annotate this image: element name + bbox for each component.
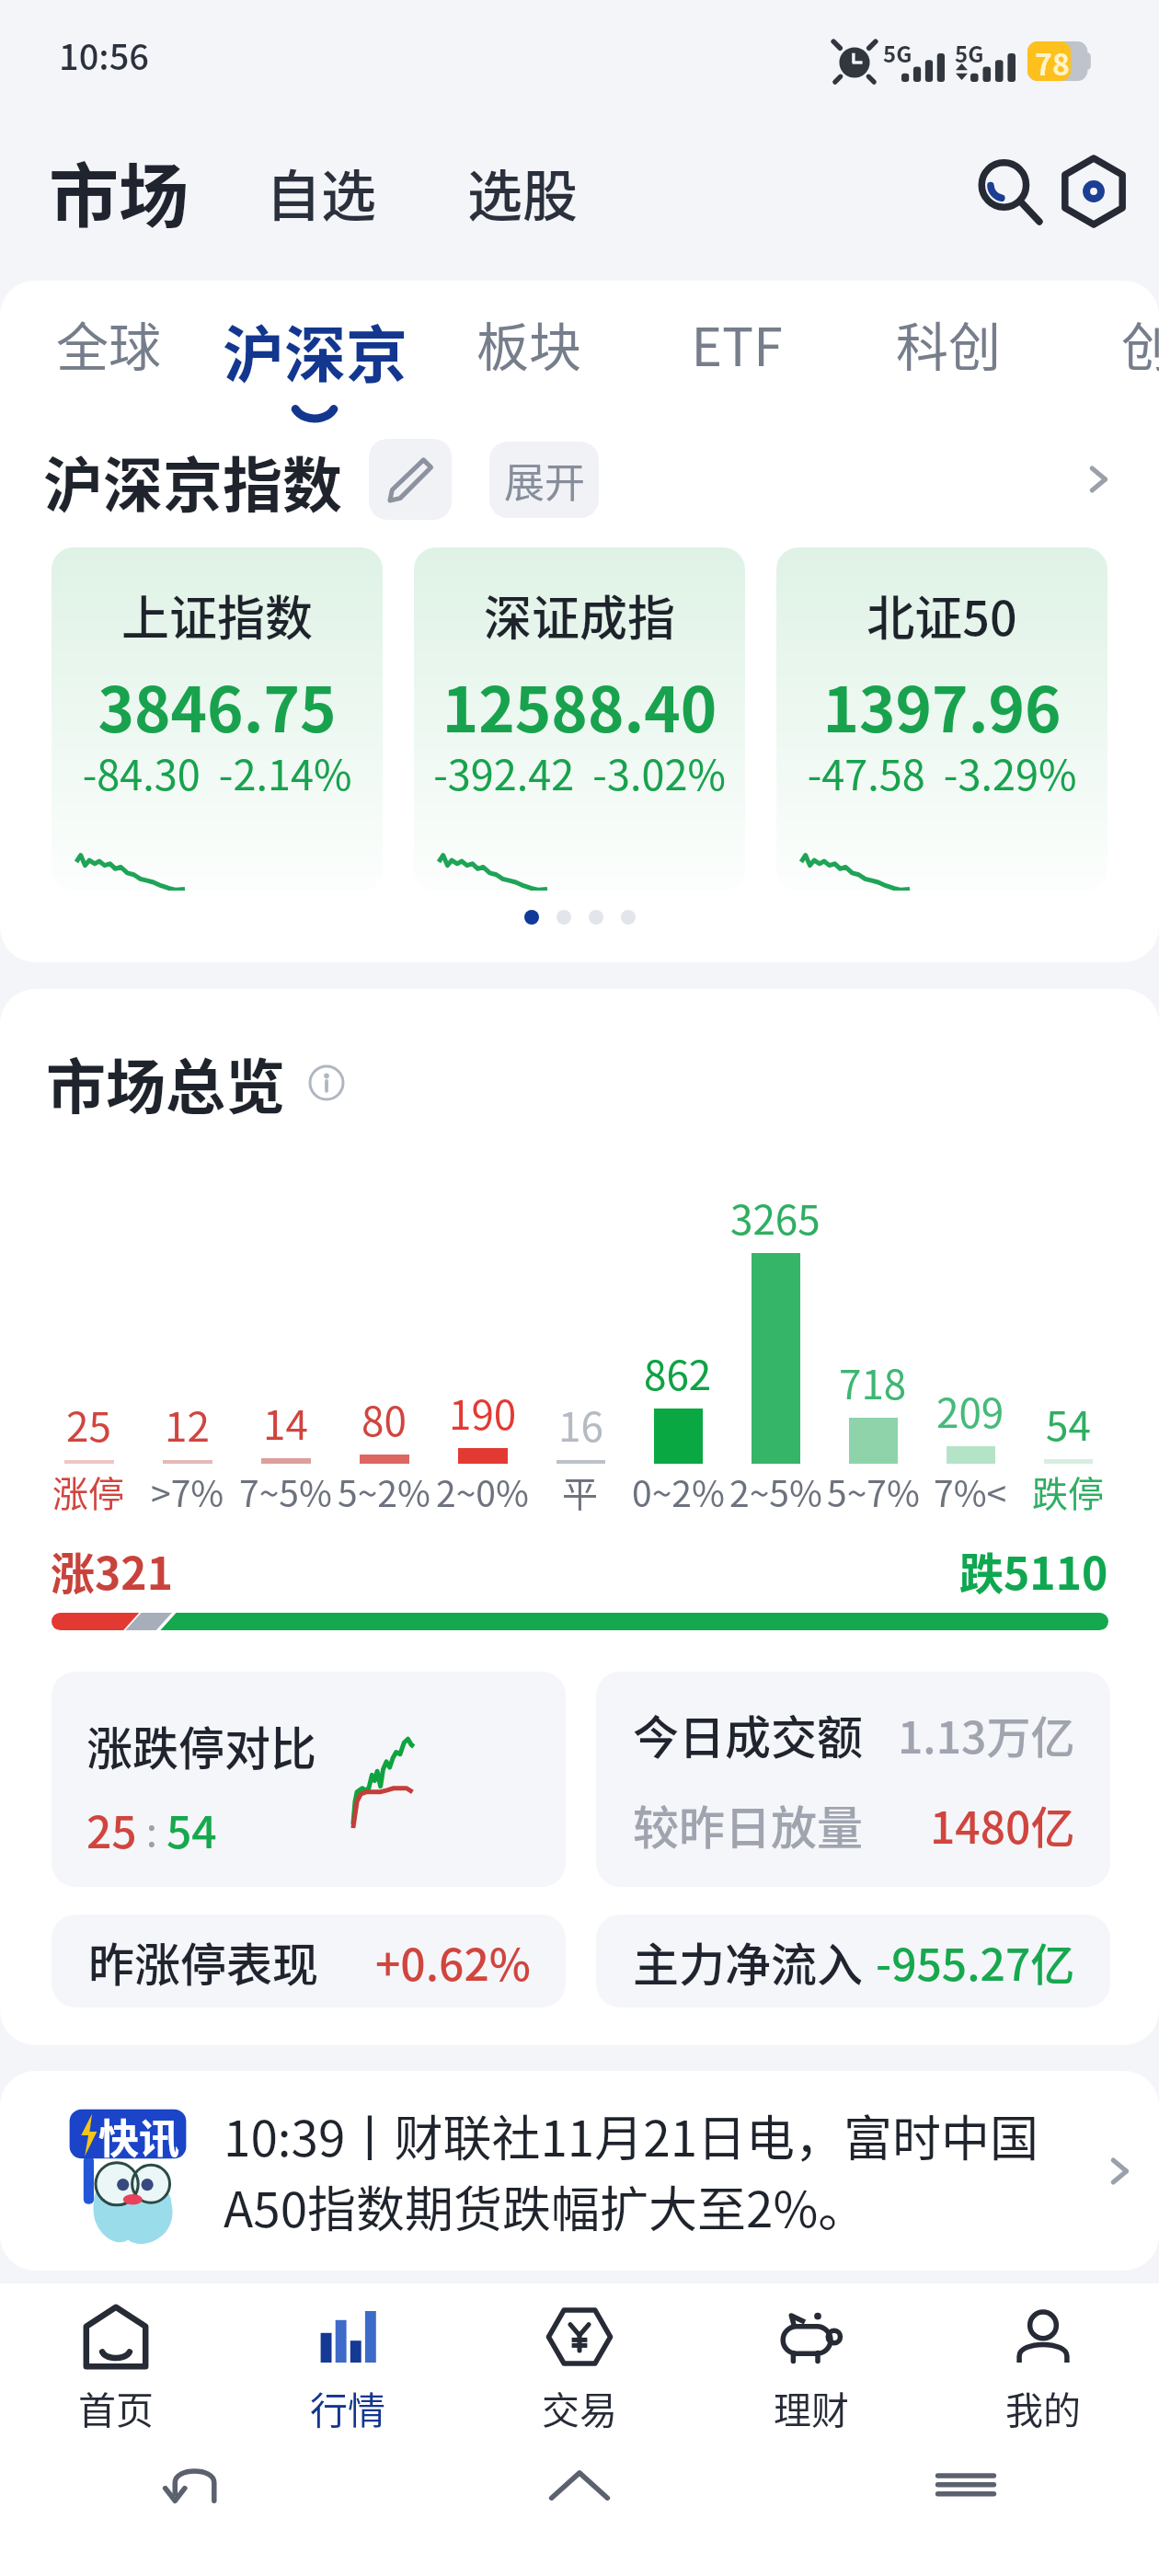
button[interactable]: 上证指数 — [52, 547, 383, 891]
button[interactable]: Recents — [931, 2449, 1001, 2519]
staticText: 板块 — [476, 305, 581, 382]
button[interactable]: 自选 — [266, 152, 376, 232]
staticText: 5~2% — [338, 1466, 430, 1517]
button[interactable]: 我的 — [927, 2305, 1159, 2434]
button[interactable]: 板块 — [419, 305, 639, 382]
staticText: 我的 — [1005, 2380, 1081, 2434]
staticText: 209 — [936, 1381, 1004, 1440]
staticText: 2~0% — [436, 1466, 529, 1517]
staticText: 展开 — [504, 451, 585, 510]
staticText: 862 — [644, 1343, 712, 1402]
staticText: 理财 — [774, 2380, 849, 2434]
staticText: -84.30 -2.14% — [52, 742, 383, 802]
button[interactable]: 昨涨停表现 — [52, 1915, 566, 2007]
button[interactable]: 理财 — [695, 2305, 927, 2434]
button[interactable]: 创 — [1037, 305, 1159, 382]
staticText: A50指数期货跌幅扩大至2%。 — [224, 2171, 867, 2242]
staticText: 10:39丨财联社11月21日电，富时中国 — [224, 2100, 1039, 2171]
button[interactable]: 沪深京 — [204, 305, 425, 420]
staticText: 5G — [883, 37, 912, 69]
button[interactable]: ETF — [626, 305, 847, 382]
staticText: >7% — [151, 1466, 224, 1517]
button[interactable]: Info — [306, 1063, 347, 1103]
staticText: 北证50 — [776, 581, 1107, 650]
button[interactable]: Settings — [1052, 150, 1135, 233]
staticText: 10:56 — [59, 29, 149, 80]
staticText: 5~7% — [827, 1466, 920, 1517]
button[interactable]: 主力净流入 — [596, 1915, 1110, 2007]
staticText: 7~5% — [239, 1466, 332, 1517]
staticText: 首页 — [78, 2380, 154, 2434]
button[interactable]: 市场 — [49, 141, 189, 242]
staticText: 市场总览 — [46, 1040, 286, 1126]
staticText: 718 — [839, 1352, 907, 1411]
staticText: 25 — [86, 1797, 137, 1861]
button[interactable]: Home — [545, 2449, 614, 2519]
staticText: 1480亿 — [930, 1792, 1075, 1857]
staticText: 3846.75 — [52, 661, 383, 750]
staticText: 跌5110 — [959, 1538, 1108, 1603]
staticText: -955.27亿 — [876, 1929, 1075, 1994]
staticText: 平 — [562, 1466, 599, 1517]
button[interactable]: Search — [968, 150, 1050, 233]
staticText: 科创 — [896, 305, 1001, 382]
button[interactable]: 今日成交额 — [596, 1672, 1110, 1887]
staticText: 主力净流入 — [633, 1928, 863, 1995]
staticText: 跌停 — [1032, 1466, 1105, 1517]
staticText: 14 — [263, 1393, 308, 1452]
staticText: -47.58 -3.29% — [776, 742, 1107, 802]
staticText: 5G — [955, 37, 984, 69]
staticText: 沪深京 — [223, 305, 407, 395]
button[interactable]: 首页 — [0, 2305, 232, 2434]
staticText: 涨跌停对比 — [86, 1712, 316, 1778]
button[interactable]: 科创 — [838, 305, 1059, 382]
staticText: 选股 — [467, 152, 578, 232]
button[interactable]: 展开 — [489, 442, 599, 518]
staticText: 1397.96 — [776, 661, 1107, 750]
button[interactable]: 选股 — [467, 152, 578, 232]
button[interactable]: 快讯 — [0, 2071, 1159, 2271]
staticText: 涨321 — [51, 1538, 173, 1603]
staticText: 快讯 — [98, 2107, 179, 2166]
staticText: -392.42 -3.02% — [414, 742, 745, 802]
button[interactable]: 北证50 — [776, 547, 1107, 891]
staticText: 12588.40 — [414, 661, 745, 750]
staticText: 市场 — [49, 141, 189, 242]
staticText: 0~2% — [632, 1466, 725, 1517]
staticText: 3265 — [730, 1188, 820, 1247]
staticText: 1.13万亿 — [898, 1702, 1075, 1766]
staticText: 上证指数 — [52, 581, 383, 650]
staticText: 54 — [1046, 1394, 1091, 1453]
staticText: +0.62% — [375, 1929, 531, 1994]
staticText: 涨停 — [52, 1466, 125, 1517]
button[interactable]: 沪深京指数 — [43, 438, 1115, 521]
button[interactable]: 深证成指 — [414, 547, 745, 891]
staticText: 7%< — [934, 1466, 1007, 1517]
button[interactable]: 全球 — [0, 305, 219, 382]
staticText: 190 — [449, 1383, 517, 1442]
button[interactable]: 行情 — [232, 2305, 464, 2434]
button[interactable]: Back — [158, 2449, 228, 2519]
staticText: 沪深京指数 — [43, 438, 343, 521]
staticText: 12 — [165, 1395, 210, 1454]
staticText: 全球 — [56, 305, 161, 382]
staticText: 今日成交额 — [633, 1701, 863, 1767]
staticText: ETF — [691, 305, 783, 382]
staticText: 78 — [1035, 41, 1070, 79]
staticText: 2~5% — [729, 1466, 822, 1517]
button[interactable]: Edit — [369, 439, 452, 520]
staticText: 54 — [166, 1797, 217, 1861]
staticText: 80 — [361, 1389, 407, 1448]
staticText: : — [137, 1800, 166, 1858]
button[interactable]: 涨跌停对比 — [52, 1672, 566, 1887]
staticText: 深证成指 — [414, 581, 745, 650]
staticText: 创 — [1121, 305, 1159, 382]
staticText: 交易 — [542, 2380, 617, 2434]
staticText: 自选 — [266, 152, 376, 232]
staticText: 昨涨停表现 — [88, 1928, 318, 1995]
button[interactable]: 交易 — [464, 2305, 695, 2434]
staticText: 16 — [558, 1395, 603, 1454]
staticText: 较昨日放量 — [633, 1791, 863, 1857]
staticText: 行情 — [310, 2380, 385, 2434]
staticText: 25 — [66, 1395, 111, 1454]
